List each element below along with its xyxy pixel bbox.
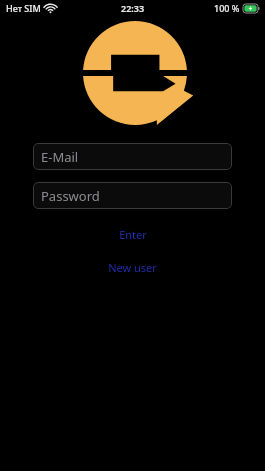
staticText: New user [108, 260, 157, 275]
button[interactable]: New user [0, 260, 265, 275]
staticText: 22:33 [121, 2, 145, 14]
staticText: Enter [119, 227, 147, 242]
staticText: Нет SIM [6, 2, 41, 14]
button[interactable]: Enter [0, 227, 265, 242]
staticText: E-Mail [41, 148, 79, 166]
other: Exchange logo [82, 21, 188, 125]
button[interactable]: Password [33, 182, 232, 209]
staticText: Password [41, 187, 100, 205]
staticText: 100 % [214, 2, 240, 14]
button[interactable]: E-Mail [33, 143, 232, 170]
